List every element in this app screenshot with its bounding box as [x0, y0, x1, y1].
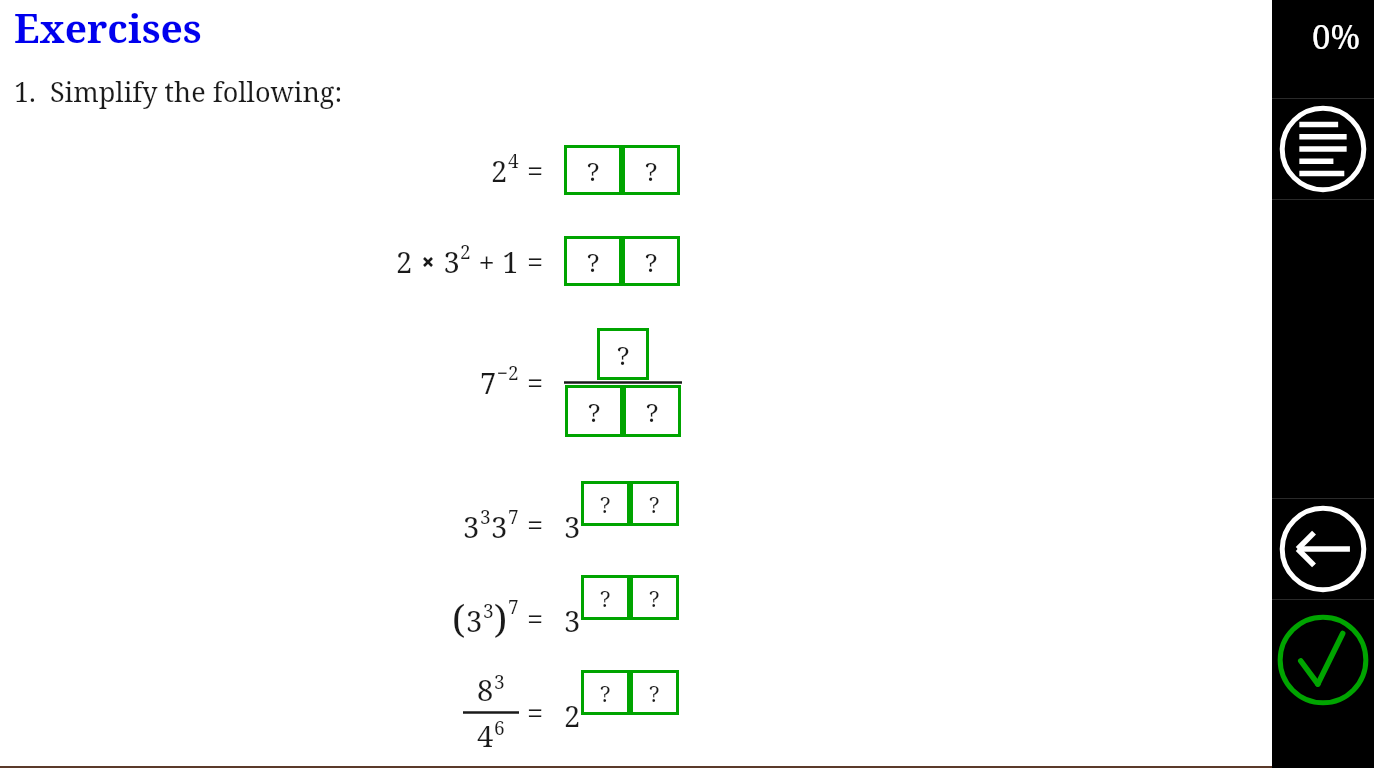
staticText: = — [527, 363, 544, 402]
staticText: 6 — [494, 715, 505, 741]
staticText: = — [527, 151, 544, 190]
button[interactable]: ? — [564, 145, 622, 195]
button[interactable]: ? — [581, 670, 630, 715]
staticText: ? — [600, 489, 611, 519]
staticText: 1. Simplify the following: — [14, 73, 343, 110]
staticText: ? — [600, 678, 611, 708]
staticText: ? — [649, 583, 660, 613]
staticText: 7 — [508, 504, 519, 530]
staticText: = — [527, 599, 544, 638]
staticText: 7 — [480, 363, 497, 402]
staticText: 8 — [477, 670, 494, 709]
staticText: ? — [588, 394, 601, 429]
staticText: ? — [649, 489, 660, 519]
staticText: 4 — [508, 148, 519, 174]
staticText: 3 — [564, 601, 581, 640]
button[interactable]: Back — [1272, 498, 1374, 600]
button[interactable]: ? — [630, 670, 679, 715]
staticText: = — [527, 242, 544, 281]
staticText: 3 — [491, 507, 508, 546]
staticText: Exercises — [14, 1, 202, 54]
button[interactable]: ? — [564, 236, 622, 286]
staticText: = — [527, 693, 544, 732]
staticText: 7 — [508, 594, 519, 620]
staticText: 3 — [494, 669, 505, 695]
staticText: = — [527, 505, 544, 544]
staticText: 2 — [491, 151, 508, 190]
staticText: 3 — [480, 504, 491, 530]
button[interactable]: ? — [622, 145, 680, 195]
staticText: ? — [646, 394, 659, 429]
staticText: 2 — [396, 242, 420, 281]
staticText: 0% — [1311, 14, 1360, 59]
staticText: 3 — [463, 507, 480, 546]
staticText: ? — [617, 337, 630, 372]
button[interactable]: ? — [630, 481, 679, 526]
staticText: 3 — [436, 242, 460, 281]
button[interactable]: 0% — [1272, 0, 1374, 98]
staticText: ? — [587, 244, 600, 279]
staticText: 3 — [564, 507, 581, 546]
staticText: 4 — [477, 716, 494, 755]
button[interactable]: Check answers — [1272, 600, 1374, 720]
staticText: ( — [452, 592, 466, 644]
button[interactable]: ? — [581, 575, 630, 620]
staticText: + 1 — [471, 242, 519, 281]
staticText: ? — [645, 153, 658, 188]
button[interactable]: ? — [581, 481, 630, 526]
staticText: ? — [587, 153, 600, 188]
staticText: 3 — [466, 601, 483, 640]
staticText: ) — [494, 592, 508, 644]
staticText: −2 — [497, 360, 519, 386]
button[interactable]: ? — [630, 575, 679, 620]
button[interactable]: ? — [623, 385, 681, 437]
button[interactable]: ? — [622, 236, 680, 286]
staticText: 2 — [564, 696, 581, 735]
staticText: 2 — [460, 239, 471, 265]
button[interactable]: ? — [565, 385, 623, 437]
button[interactable]: ? — [597, 328, 649, 380]
staticText: ? — [649, 678, 660, 708]
staticText: 3 — [483, 598, 494, 624]
staticText: ? — [645, 244, 658, 279]
staticText: ? — [600, 583, 611, 613]
button[interactable]: Contents — [1272, 98, 1374, 200]
